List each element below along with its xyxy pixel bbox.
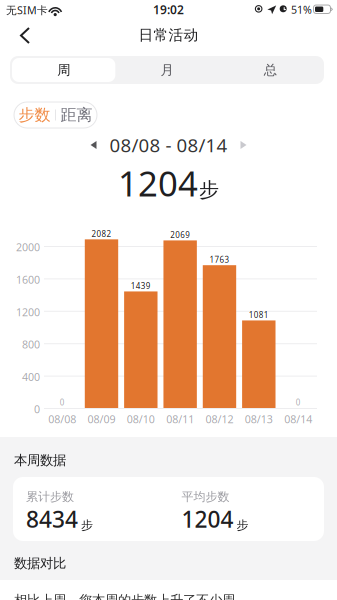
- button[interactable]: 上一周: [81, 132, 105, 158]
- staticText: 无SIM卡: [6, 3, 48, 17]
- staticText: 1439: [131, 281, 151, 291]
- staticText: 数据对比: [14, 555, 66, 571]
- staticText: 1081: [249, 310, 269, 320]
- staticText: 08/08 - 08/14: [109, 133, 227, 157]
- staticText: 2069: [170, 230, 190, 240]
- staticText: 400: [22, 370, 40, 384]
- staticText: 1204: [118, 160, 198, 206]
- staticText: 08/14: [284, 412, 312, 426]
- staticText: 相比上周，您本周的步数上升了不少周: [14, 592, 235, 600]
- staticText: 0: [296, 397, 301, 408]
- staticText: 0: [34, 402, 40, 416]
- staticText: 08/08: [48, 412, 76, 426]
- staticText: 8434: [26, 504, 78, 534]
- staticText: 08/10: [127, 412, 155, 426]
- staticText: 1600: [16, 272, 40, 287]
- button[interactable]: 距离: [56, 102, 97, 128]
- button[interactable]: 下一周: [231, 132, 255, 158]
- staticText: 步: [81, 518, 93, 533]
- button[interactable]: 月: [115, 58, 219, 82]
- staticText: 19:02: [153, 2, 184, 17]
- staticText: 1763: [209, 254, 229, 265]
- button[interactable]: 总: [219, 58, 322, 82]
- staticText: 08/11: [166, 412, 194, 426]
- staticText: 0: [60, 397, 65, 408]
- staticText: 800: [22, 337, 40, 351]
- staticText: 累计步数: [26, 489, 74, 504]
- staticText: 08/09: [87, 412, 115, 426]
- staticText: 平均步数: [181, 489, 229, 504]
- button[interactable]: 返回: [0, 18, 43, 52]
- staticText: 2082: [91, 228, 111, 239]
- staticText: 距离: [60, 105, 92, 125]
- staticText: 总: [264, 62, 277, 78]
- staticText: 08/12: [205, 412, 233, 426]
- button[interactable]: 周: [12, 58, 115, 82]
- staticText: 月: [160, 62, 173, 78]
- staticText: 51%: [291, 2, 312, 17]
- staticText: 步: [199, 177, 219, 202]
- staticText: 本周数据: [14, 452, 66, 468]
- staticText: 1204: [181, 504, 233, 534]
- button[interactable]: 步数: [14, 102, 55, 128]
- staticText: 周: [57, 62, 70, 78]
- staticText: 1200: [16, 305, 40, 319]
- staticText: 步数: [18, 105, 50, 125]
- staticText: 08/13: [245, 412, 273, 426]
- staticText: 日常活动: [138, 26, 198, 44]
- staticText: 步: [236, 518, 248, 533]
- staticText: 2000: [16, 240, 40, 254]
